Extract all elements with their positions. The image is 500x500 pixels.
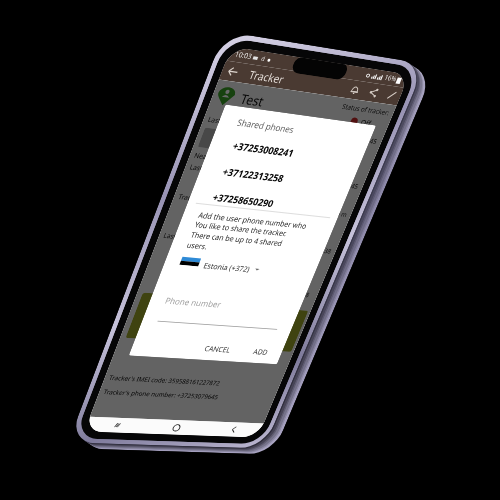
staticText: ADD: [252, 346, 270, 356]
staticText: +37258650290: [211, 190, 276, 210]
staticText: Last connection:: [206, 115, 259, 131]
button[interactable]: [198, 128, 229, 150]
button[interactable]: Share: [360, 82, 386, 103]
staticText: +37253008241: [231, 139, 296, 160]
staticText: +37122313258: [221, 165, 286, 185]
button[interactable]: Estonia (+372): [178, 257, 262, 276]
staticText: Test: [238, 90, 267, 110]
button[interactable]: CANCEL: [196, 339, 240, 358]
staticText: Tracker's location:: [177, 192, 234, 208]
button[interactable]: Home: [145, 419, 208, 436]
staticText: Tracker: [247, 67, 287, 87]
staticText: Version 1.11.10: [84, 424, 253, 437]
button[interactable]: Notifications: [341, 79, 367, 100]
button[interactable]: Back: [219, 60, 246, 82]
staticText: 19.05.2024 12:23:45: [301, 176, 360, 192]
button[interactable]: Edit: [378, 85, 404, 106]
staticText: Home 120 m: [308, 207, 348, 220]
staticText: 19.05.2024 12:23:45: [320, 130, 379, 147]
staticText: 16%: [383, 73, 398, 84]
staticText: Status of tracker:: [340, 102, 391, 118]
button[interactable]: Recents: [84, 417, 150, 434]
staticText: Add the user phone number who You like t…: [185, 209, 309, 260]
staticText: Last geofence event:: [162, 231, 226, 246]
staticText: Phone number: [164, 294, 224, 309]
staticText: d: [260, 55, 267, 63]
button[interactable]: ADD: [245, 342, 277, 360]
staticText: Off: [359, 117, 373, 128]
staticText: Tracker's IMEI code: 359588161227872: [107, 374, 222, 388]
staticText: Shared phones: [236, 116, 297, 135]
button[interactable]: [267, 309, 308, 352]
staticText: Last connection of tracker:: [188, 162, 270, 181]
button[interactable]: Back: [202, 421, 264, 437]
staticText: 10:03: [233, 49, 253, 62]
staticText: CANCEL: [203, 343, 232, 354]
staticText: 59.4372 24.7538: [283, 243, 333, 256]
staticText: Nearest geofence:: [192, 151, 250, 167]
staticText: Estonia (+372): [202, 260, 252, 274]
staticText: Tracker's phone number: +37253079645: [102, 388, 220, 402]
staticText: 738: [297, 290, 312, 300]
button[interactable]: [125, 292, 170, 340]
